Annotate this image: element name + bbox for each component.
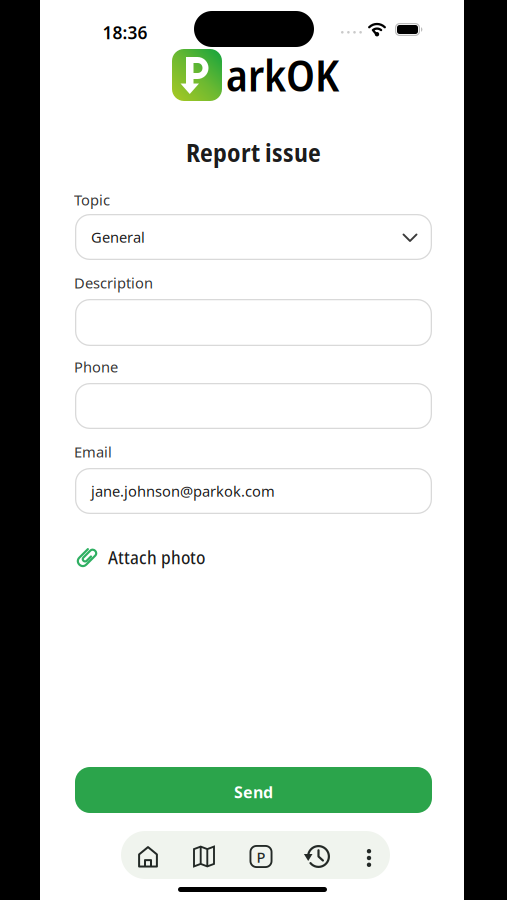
button[interactable]: Map	[191, 843, 217, 869]
staticText: P	[256, 847, 265, 867]
button[interactable]: Home	[135, 843, 161, 869]
button[interactable]: General	[75, 214, 432, 260]
staticText: jane.johnson@parkok.com	[91, 481, 275, 501]
button[interactable]: Attach photo	[76, 544, 205, 571]
staticText: 18:36	[102, 21, 147, 44]
staticText: Send	[234, 781, 273, 803]
staticText: Topic	[74, 190, 110, 209]
staticText: General	[91, 227, 145, 247]
button[interactable]: Send	[75, 767, 432, 813]
staticText: Phone	[74, 357, 118, 376]
button[interactable]: Parking	[248, 843, 274, 869]
staticText: Description	[74, 273, 153, 292]
button[interactable]: History	[305, 843, 331, 869]
button[interactable]: More	[356, 843, 382, 869]
staticText: Email	[74, 442, 112, 461]
staticText: Attach photo	[108, 546, 205, 569]
staticText: Report issue	[186, 135, 321, 169]
staticText: arkOK	[226, 46, 339, 104]
